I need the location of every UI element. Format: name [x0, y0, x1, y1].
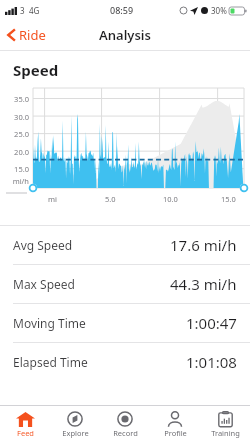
- staticText: Moving Time: [13, 315, 86, 331]
- staticText: 35.0: [3, 94, 29, 104]
- staticText: Profile: [164, 428, 187, 438]
- staticText: Speed: [13, 60, 59, 80]
- staticText: 5.0: [105, 194, 116, 204]
- staticText: mi: [48, 194, 57, 204]
- staticText: 08:59: [110, 4, 134, 16]
- staticText: Avg Speed: [13, 237, 73, 253]
- staticText: mi/h: [3, 176, 29, 186]
- button[interactable]: Max Speed: [0, 265, 250, 303]
- button[interactable]: Avg Speed: [0, 226, 250, 264]
- button[interactable]: Explore: [50, 406, 100, 443]
- staticText: Elapsed Time: [13, 354, 88, 370]
- staticText: 1:01:08: [186, 352, 237, 372]
- staticText: Explore: [62, 428, 89, 438]
- staticText: 15.0: [3, 164, 29, 174]
- staticText: Max Speed: [13, 276, 75, 292]
- staticText: 25.0: [3, 129, 29, 139]
- staticText: 4G: [29, 5, 40, 16]
- staticText: 10.0: [163, 194, 178, 204]
- staticText: 1:00:47: [186, 313, 237, 333]
- staticText: Analysis: [99, 26, 151, 44]
- button[interactable]: Ride: [4, 21, 49, 49]
- button[interactable]: Record: [100, 406, 150, 443]
- staticText: 17.6 mi/h: [170, 235, 237, 255]
- button[interactable]: Moving Time: [0, 304, 250, 342]
- staticText: 20.0: [3, 147, 29, 157]
- button[interactable]: Elapsed Time: [0, 343, 250, 381]
- staticText: 15.0: [221, 194, 236, 204]
- button[interactable]: Feed: [0, 406, 50, 443]
- staticText: 3: [20, 5, 25, 16]
- button[interactable]: Profile: [150, 406, 200, 443]
- staticText: 30%: [211, 5, 227, 16]
- staticText: Training: [211, 428, 240, 438]
- button[interactable]: Training: [200, 406, 250, 443]
- staticText: 30.0: [3, 112, 29, 122]
- staticText: Record: [113, 428, 138, 438]
- staticText: 44.3 mi/h: [170, 274, 237, 294]
- staticText: Feed: [17, 428, 34, 438]
- staticText: Ride: [19, 26, 46, 44]
